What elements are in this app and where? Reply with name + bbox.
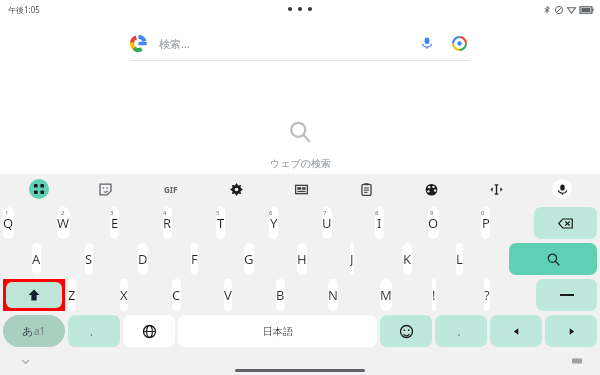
button[interactable]: E bbox=[110, 207, 119, 239]
staticText: A bbox=[32, 250, 41, 268]
button[interactable]: N bbox=[328, 279, 338, 311]
staticText: あ bbox=[22, 324, 34, 338]
button[interactable]: Shift bbox=[6, 282, 62, 308]
button[interactable]: Hyphen bbox=[536, 279, 597, 311]
staticText: Z bbox=[68, 286, 76, 304]
button[interactable]: Translate bbox=[269, 174, 334, 204]
button[interactable]: Small circle bbox=[435, 315, 487, 347]
staticText: E bbox=[111, 214, 119, 232]
staticText: N bbox=[328, 286, 338, 304]
staticText: 2 bbox=[61, 209, 65, 217]
button[interactable]: Settings bbox=[204, 174, 269, 204]
button[interactable]: Apps bbox=[6, 174, 72, 204]
staticText: 7 bbox=[323, 209, 327, 217]
staticText: 6 bbox=[269, 209, 273, 217]
staticText: J bbox=[350, 250, 354, 268]
staticText: M bbox=[380, 286, 392, 304]
button[interactable]: Themes bbox=[399, 174, 464, 204]
button[interactable]: ? bbox=[484, 279, 490, 311]
staticText: 午後1:05 bbox=[8, 4, 40, 15]
button[interactable]: X bbox=[120, 279, 128, 311]
button[interactable]: Cursor left bbox=[490, 315, 542, 347]
button[interactable]: D bbox=[138, 243, 148, 275]
staticText: 日本語 bbox=[263, 325, 293, 338]
button[interactable]: Stickers bbox=[72, 174, 138, 204]
staticText: ? bbox=[484, 286, 490, 304]
button[interactable]: Q bbox=[3, 207, 14, 239]
staticText: B bbox=[276, 286, 285, 304]
staticText: D bbox=[138, 250, 148, 268]
staticText: I bbox=[377, 214, 382, 232]
staticText: F bbox=[191, 250, 198, 268]
staticText: 9 bbox=[430, 209, 434, 217]
staticText: V bbox=[224, 286, 232, 304]
button[interactable]: Keyboard layout bbox=[568, 352, 586, 370]
staticText: 1 bbox=[5, 209, 9, 217]
staticText: U bbox=[322, 214, 332, 232]
button[interactable]: Dakuten bbox=[68, 315, 120, 347]
button[interactable]: Voice search bbox=[416, 32, 438, 54]
button[interactable]: Z bbox=[68, 279, 76, 311]
button[interactable]: Emoji bbox=[380, 315, 432, 347]
button[interactable]: Search bbox=[509, 243, 597, 275]
staticText: a1 bbox=[34, 324, 46, 338]
button[interactable]: S bbox=[85, 243, 93, 275]
staticText: 8 bbox=[375, 209, 379, 217]
staticText: L bbox=[456, 250, 463, 268]
staticText: X bbox=[120, 286, 128, 304]
staticText: Y bbox=[270, 214, 278, 232]
staticText: ! bbox=[432, 286, 436, 304]
button[interactable]: F bbox=[191, 243, 198, 275]
button[interactable]: 日本語 bbox=[178, 315, 377, 347]
staticText: 3 bbox=[110, 209, 114, 217]
button[interactable]: M bbox=[380, 279, 392, 311]
staticText: R bbox=[163, 214, 172, 232]
button[interactable]: Google Lens bbox=[448, 32, 470, 54]
button[interactable]: A bbox=[32, 243, 41, 275]
button[interactable]: J bbox=[350, 243, 354, 275]
staticText: T bbox=[217, 214, 225, 232]
staticText: O bbox=[428, 214, 439, 232]
button[interactable]: Y bbox=[269, 207, 278, 239]
button[interactable]: Clipboard bbox=[334, 174, 399, 204]
staticText: H bbox=[297, 250, 307, 268]
button[interactable]: 検索… bbox=[130, 26, 470, 60]
button[interactable]: Switch language bbox=[123, 315, 175, 347]
button[interactable]: I bbox=[375, 207, 384, 239]
staticText: 。 bbox=[457, 326, 466, 337]
staticText: 検索… bbox=[159, 36, 416, 51]
button[interactable]: Hide keyboard bbox=[16, 352, 34, 370]
button[interactable]: Cursor right bbox=[545, 315, 597, 347]
staticText: 5 bbox=[216, 209, 220, 217]
staticText: S bbox=[85, 250, 93, 268]
button[interactable]: B bbox=[276, 279, 285, 311]
button[interactable]: R bbox=[163, 207, 172, 239]
button[interactable]: GIF bbox=[138, 174, 204, 204]
button[interactable]: ! bbox=[432, 279, 436, 311]
staticText: P bbox=[482, 214, 490, 232]
button[interactable]: Input mode bbox=[3, 315, 65, 347]
button[interactable]: V bbox=[224, 279, 232, 311]
staticText: 、 bbox=[89, 324, 100, 338]
staticText: ウェブの検索 bbox=[270, 157, 331, 170]
button[interactable]: W bbox=[57, 207, 70, 239]
staticText: Q bbox=[3, 214, 14, 232]
staticText: 0 bbox=[481, 209, 485, 217]
staticText: 4 bbox=[163, 209, 167, 217]
button[interactable]: K bbox=[403, 243, 412, 275]
button[interactable]: Text editing bbox=[464, 174, 529, 204]
staticText: GIF bbox=[164, 184, 178, 195]
button[interactable]: U bbox=[322, 207, 332, 239]
button[interactable]: Backspace bbox=[534, 207, 597, 239]
staticText: G bbox=[244, 250, 254, 268]
button[interactable]: O bbox=[428, 207, 439, 239]
button[interactable]: Voice input bbox=[529, 174, 594, 204]
button[interactable]: L bbox=[456, 243, 463, 275]
button[interactable]: T bbox=[216, 207, 225, 239]
staticText: C bbox=[172, 286, 181, 304]
button[interactable]: C bbox=[172, 279, 181, 311]
button[interactable]: P bbox=[481, 207, 490, 239]
button[interactable]: G bbox=[244, 243, 254, 275]
staticText: K bbox=[403, 250, 412, 268]
button[interactable]: H bbox=[297, 243, 307, 275]
